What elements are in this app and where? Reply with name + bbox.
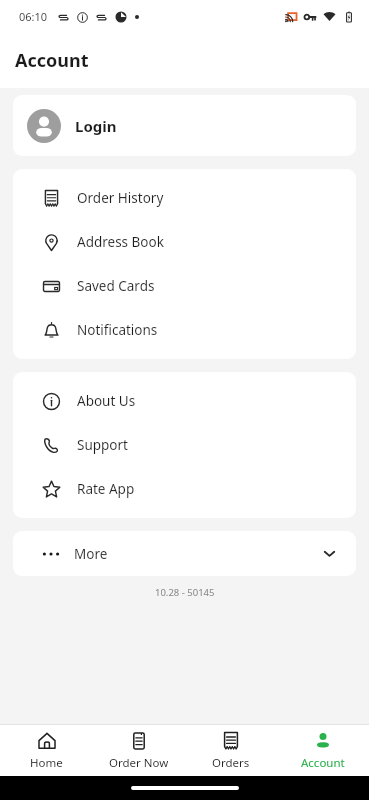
staticText: Account: [301, 755, 345, 771]
button[interactable]: Order Now: [93, 725, 185, 776]
staticText: 06:10: [19, 9, 48, 24]
button[interactable]: Saved Cards: [13, 264, 356, 308]
staticText: Order Now: [109, 755, 169, 771]
button[interactable]: Account: [277, 725, 369, 776]
button[interactable]: About Us: [13, 379, 356, 423]
staticText: More: [74, 545, 108, 563]
staticText: Rate App: [77, 480, 135, 498]
button[interactable]: Support: [13, 423, 356, 467]
button[interactable]: Orders: [185, 725, 277, 776]
staticText: About Us: [77, 392, 136, 410]
staticText: Account: [15, 48, 89, 73]
staticText: Saved Cards: [77, 277, 155, 295]
button[interactable]: Rate App: [13, 467, 356, 511]
staticText: Orders: [212, 755, 250, 771]
staticText: Address Book: [77, 233, 164, 251]
button[interactable]: Order History: [13, 176, 356, 220]
button[interactable]: Address Book: [13, 220, 356, 264]
staticText: Home: [30, 755, 63, 771]
button[interactable]: More: [13, 531, 356, 576]
staticText: 10.28 - 50145: [155, 586, 215, 599]
button[interactable]: Home: [0, 725, 93, 776]
button[interactable]: Login: [13, 95, 356, 156]
staticText: Support: [77, 436, 128, 454]
staticText: Order History: [77, 189, 164, 207]
staticText: Notifications: [77, 321, 158, 339]
button[interactable]: Notifications: [13, 308, 356, 352]
staticText: Login: [75, 116, 117, 136]
